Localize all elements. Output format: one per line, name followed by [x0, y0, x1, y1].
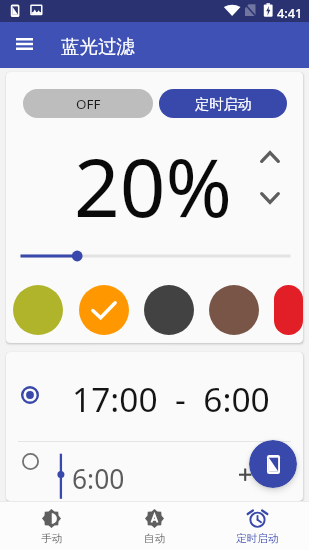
staticText: 手动 — [41, 532, 63, 545]
staticText: 蓝光过滤 — [61, 35, 135, 58]
button[interactable]: Amber filter colour — [79, 285, 129, 335]
staticText: 定时启动 — [195, 95, 252, 113]
button[interactable]: Brown filter colour — [209, 285, 259, 335]
button[interactable]: OFF — [23, 89, 153, 118]
button[interactable]: Filter intensity — [6, 242, 303, 270]
staticText: 自动 — [144, 532, 166, 545]
button[interactable]: 自动 — [103, 501, 206, 550]
button[interactable]: 定时启动 — [206, 501, 309, 550]
button[interactable]: 手动 — [0, 501, 103, 550]
button[interactable]: 6:00 — [6, 442, 303, 501]
button[interactable]: Add schedule — [249, 440, 297, 488]
staticText: OFF — [76, 95, 101, 113]
button[interactable]: 17:00 - 6:00 — [6, 352, 303, 441]
button[interactable]: 定时启动 — [159, 89, 287, 118]
button[interactable]: Open navigation menu — [8, 28, 40, 60]
button[interactable]: Decrease intensity — [252, 180, 288, 216]
staticText: 4:41 — [277, 4, 303, 21]
staticText: 6:00 — [72, 461, 125, 497]
staticText: 定时启动 — [236, 532, 279, 545]
button[interactable]: Grey filter colour — [144, 285, 194, 335]
staticText: 20% — [74, 131, 232, 240]
staticText: 17:00 - 6:00 — [72, 376, 270, 422]
button[interactable]: Red filter colour — [274, 285, 303, 335]
button[interactable]: Olive filter colour — [13, 285, 63, 335]
button[interactable]: Increase intensity — [252, 139, 288, 175]
